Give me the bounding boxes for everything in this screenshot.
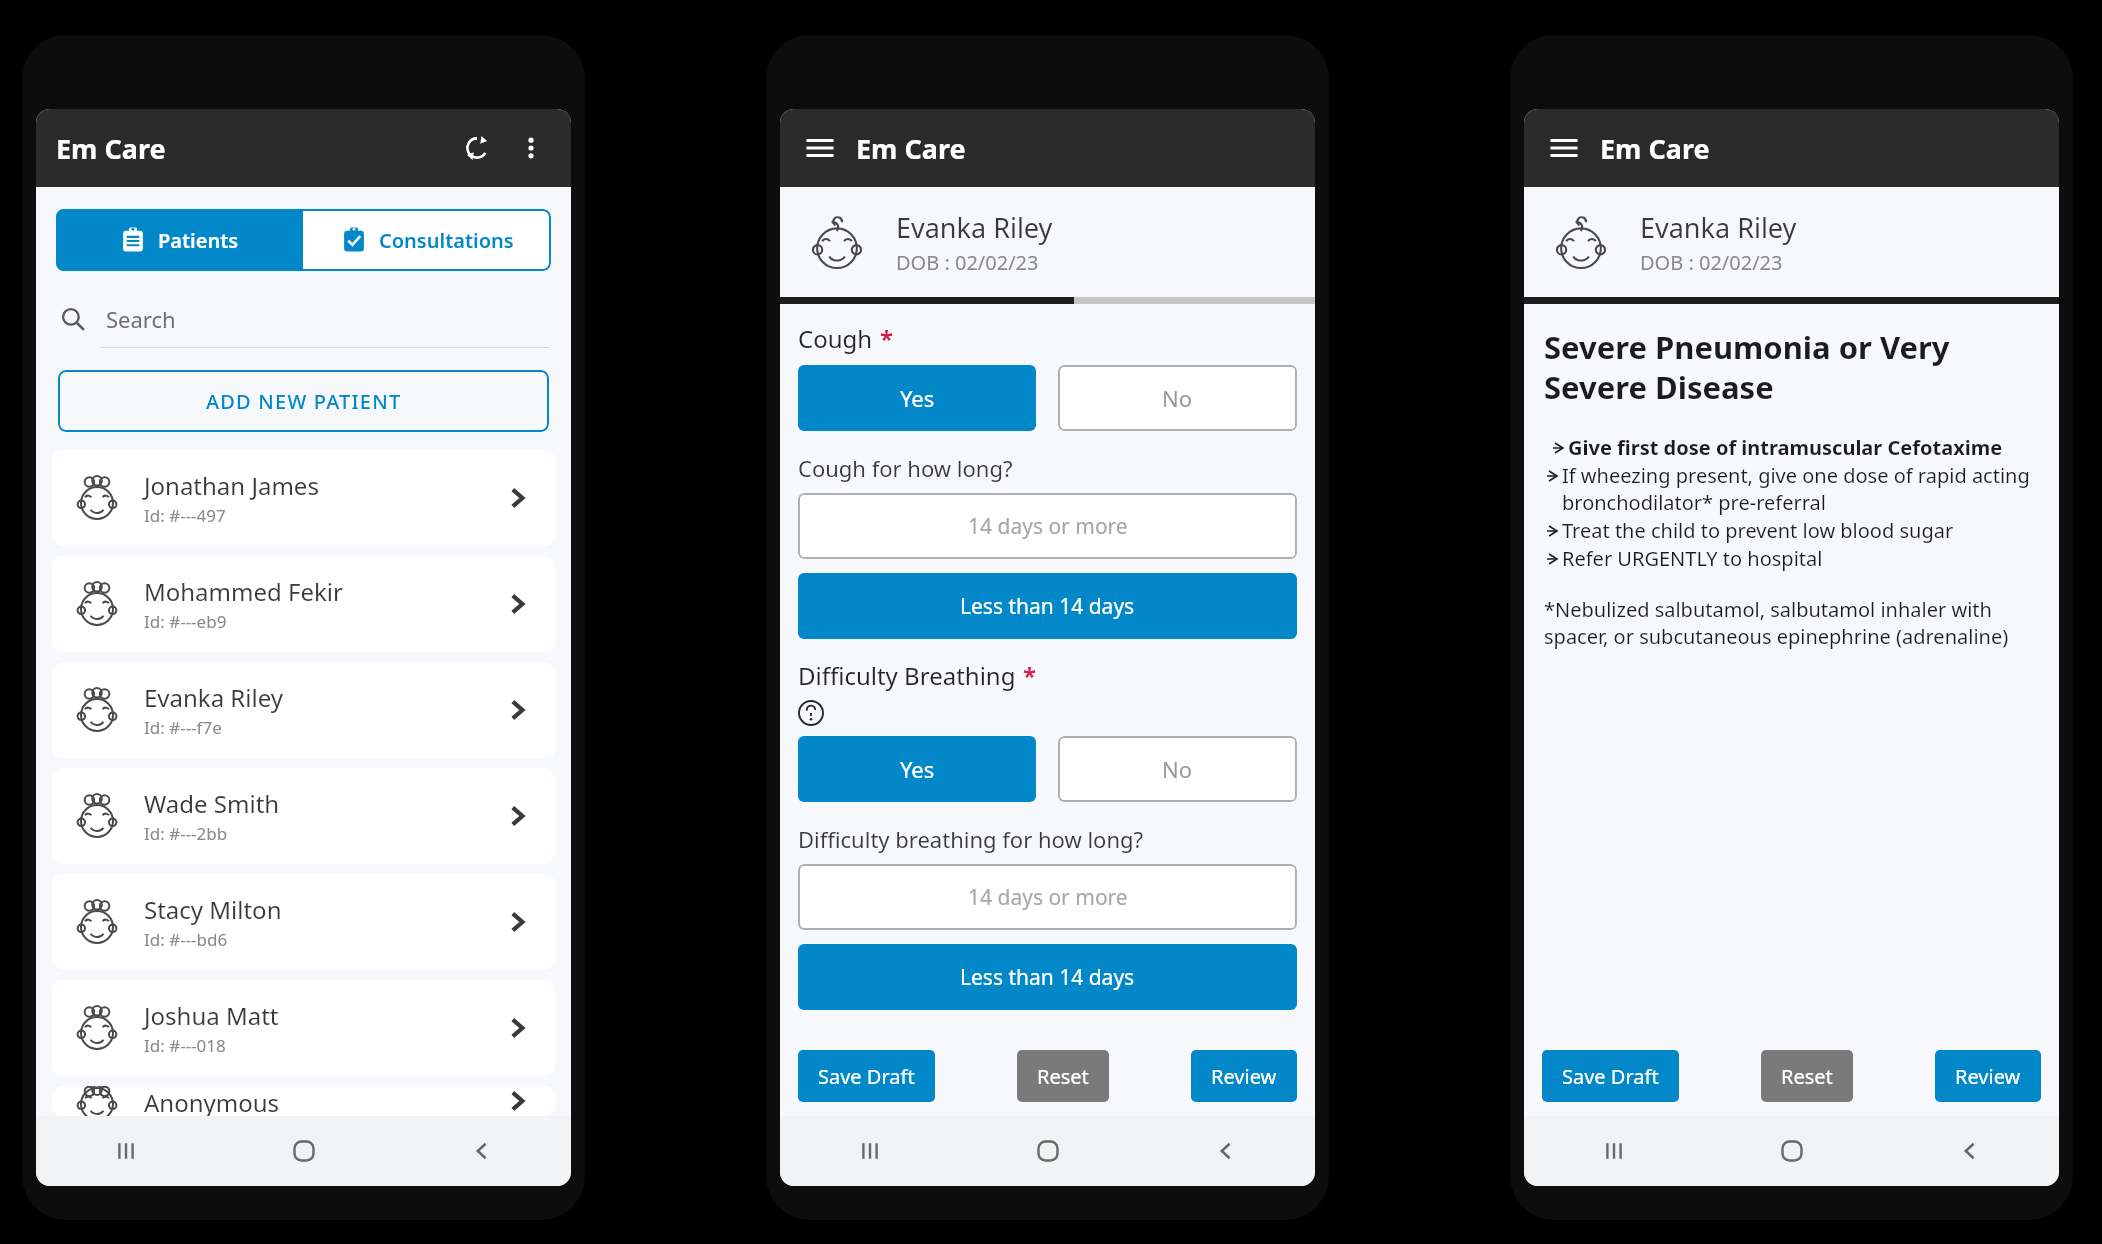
button[interactable]: Home	[959, 1116, 1137, 1186]
staticText: Difficulty Breathing	[798, 659, 1016, 692]
staticText: Evanka Riley	[144, 681, 283, 714]
staticText: Reset	[1037, 1063, 1089, 1090]
staticText: DOB : 02/02/23	[1640, 249, 1783, 276]
staticText: Id: #---018	[144, 1034, 226, 1057]
button[interactable]: Reset	[1017, 1050, 1109, 1102]
staticText: No	[1162, 383, 1193, 413]
button[interactable]: Consultations	[303, 209, 551, 271]
staticText: Id: #---eb9	[144, 610, 227, 633]
button[interactable]: Evanka Riley	[1524, 187, 2059, 297]
button[interactable]: 14 days or more	[798, 493, 1297, 559]
staticText: *	[1023, 659, 1037, 692]
staticText: If wheezing present, give one dose of ra…	[1562, 462, 2039, 516]
staticText: 14 days or more	[968, 512, 1128, 541]
staticText: No	[1162, 754, 1193, 784]
staticText: DOB : 02/02/23	[896, 249, 1039, 276]
button[interactable]: Evanka Riley	[52, 662, 555, 758]
staticText: Review	[1211, 1063, 1277, 1090]
button[interactable]: ADD NEW PATIENT	[58, 370, 549, 432]
staticText: Stacy Milton	[144, 893, 282, 926]
staticText: Yes	[900, 754, 935, 784]
button[interactable]: Anonymous	[52, 1086, 555, 1116]
button[interactable]: Recent apps	[1524, 1116, 1703, 1186]
staticText: Less than 14 days	[960, 592, 1135, 621]
button[interactable]: Home	[215, 1116, 393, 1186]
staticText: Id: #---497	[144, 504, 226, 527]
staticText: *Nebulized salbutamol, salbutamol inhale…	[1544, 596, 2039, 650]
button[interactable]: Back	[1881, 1116, 2059, 1186]
button[interactable]: Review	[1191, 1050, 1297, 1102]
staticText: Em Care	[1600, 130, 1710, 167]
staticText: ADD NEW PATIENT	[206, 388, 402, 415]
staticText: Cough for how long?	[798, 453, 1013, 483]
staticText: Wade Smith	[144, 787, 280, 820]
button[interactable]: Review	[1935, 1050, 2041, 1102]
staticText: Id: #---2bb	[144, 822, 228, 845]
button[interactable]: More options	[511, 128, 551, 168]
staticText: 14 days or more	[968, 883, 1128, 912]
button[interactable]: Joshua Matt	[52, 980, 555, 1076]
button[interactable]: 14 days or more	[798, 864, 1297, 930]
staticText: Anonymous	[144, 1086, 280, 1116]
button[interactable]: Evanka Riley	[780, 187, 1315, 297]
button[interactable]: Save Draft	[798, 1050, 935, 1102]
staticText: Id: #---f7e	[144, 716, 222, 739]
staticText: Treat the child to prevent low blood sug…	[1562, 517, 1954, 544]
button[interactable]: Recent apps	[36, 1116, 215, 1186]
staticText: Cough	[798, 322, 873, 355]
button[interactable]: Search	[58, 297, 549, 341]
button[interactable]: Back	[1137, 1116, 1315, 1186]
staticText: Difficulty breathing for how long?	[798, 824, 1144, 854]
staticText: Em Care	[856, 130, 966, 167]
button[interactable]: Less than 14 days	[798, 573, 1297, 639]
button[interactable]: Recent apps	[780, 1116, 959, 1186]
staticText: Reset	[1781, 1063, 1833, 1090]
button[interactable]: Yes	[798, 736, 1036, 802]
staticText: Id: #---bd6	[144, 928, 228, 951]
staticText: Jonathan James	[144, 469, 319, 502]
staticText: Refer URGENTLY to hospital	[1562, 545, 1823, 572]
staticText: Less than 14 days	[960, 963, 1135, 992]
staticText: Review	[1955, 1063, 2021, 1090]
button[interactable]: Jonathan James	[52, 450, 555, 546]
staticText: Yes	[900, 383, 935, 413]
button[interactable]: Back	[393, 1116, 571, 1186]
staticText: Consultations	[379, 227, 514, 254]
staticText: Severe Pneumonia or Very Severe Disease	[1544, 326, 2039, 408]
button[interactable]: Less than 14 days	[798, 944, 1297, 1010]
staticText: Patients	[158, 227, 239, 254]
button[interactable]: Menu	[798, 126, 842, 170]
staticText: Give first dose of intramuscular Cefotax…	[1568, 434, 2003, 461]
staticText: Mohammed Fekir	[144, 575, 343, 608]
button[interactable]: No	[1058, 736, 1297, 802]
staticText: Em Care	[56, 130, 166, 167]
button[interactable]: Menu	[1542, 126, 1586, 170]
button[interactable]: Home	[1703, 1116, 1881, 1186]
button[interactable]: No	[1058, 365, 1297, 431]
button[interactable]: Reset	[1761, 1050, 1853, 1102]
button[interactable]: Patients	[56, 209, 303, 271]
button[interactable]: Help	[798, 696, 832, 730]
staticText: Evanka Riley	[896, 209, 1053, 246]
staticText: Joshua Matt	[144, 999, 279, 1032]
button[interactable]: Yes	[798, 365, 1036, 431]
button[interactable]: Mohammed Fekir	[52, 556, 555, 652]
staticText: Evanka Riley	[1640, 209, 1797, 246]
button[interactable]: Sync	[453, 124, 501, 172]
button[interactable]: Save Draft	[1542, 1050, 1679, 1102]
staticText: Search	[106, 304, 176, 334]
staticText: Save Draft	[818, 1063, 915, 1090]
button[interactable]: Wade Smith	[52, 768, 555, 864]
button[interactable]: Stacy Milton	[52, 874, 555, 970]
staticText: Save Draft	[1562, 1063, 1659, 1090]
staticText: *	[880, 322, 894, 355]
